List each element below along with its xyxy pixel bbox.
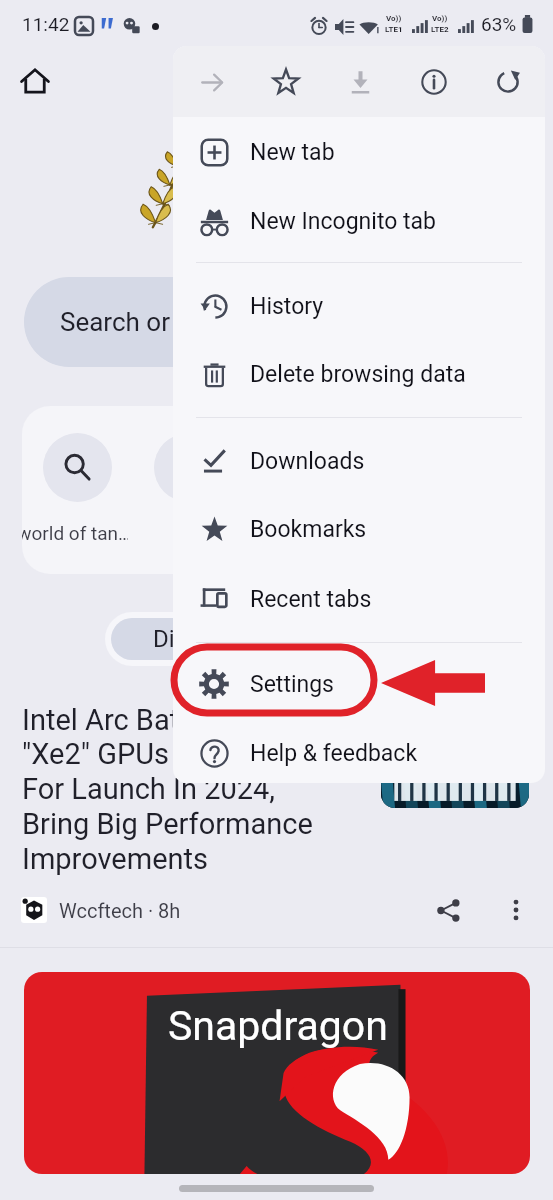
staticText: Discover (153, 625, 246, 653)
button[interactable]: Search or type URL (24, 277, 454, 367)
staticText: Downloads (250, 448, 365, 475)
button[interactable]: Help & feedback (173, 730, 545, 776)
staticText: Snapdragon (168, 1002, 388, 1050)
staticText: New tab (250, 139, 335, 166)
staticText: 1 (168, 522, 208, 544)
button[interactable]: world of tan… (22, 433, 133, 553)
staticText: Settings (250, 671, 334, 698)
button[interactable]: History (173, 283, 545, 329)
staticText: Delete browsing data (250, 361, 466, 388)
staticText: 63% (481, 13, 517, 35)
staticText: Recent tabs (250, 586, 372, 613)
button[interactable]: Discover (111, 618, 287, 660)
staticText: Search or type URL (60, 307, 279, 337)
staticText: Bookmarks (250, 516, 367, 543)
button[interactable]: New tab (173, 129, 545, 175)
button[interactable]: Settings (173, 661, 545, 707)
staticText: Wccftech · 8h (59, 899, 181, 922)
button[interactable]: Home (12, 58, 57, 103)
button[interactable]: Bookmarks (173, 506, 545, 552)
staticText: Help & feedback (250, 740, 418, 767)
button[interactable]: Delete browsing data (173, 351, 545, 397)
button[interactable]: Reload (479, 53, 537, 111)
button[interactable]: Forward (183, 53, 241, 111)
button[interactable]: New Incognito tab (173, 198, 545, 244)
button[interactable]: Recent tabs (173, 576, 545, 622)
staticText: Intel Arc Battlemage "Xe2" GPUs Expected… (22, 703, 402, 877)
staticText: Vo)) (432, 14, 448, 23)
button[interactable]: Downloads (173, 438, 545, 484)
staticText: New Incognito tab (250, 208, 436, 235)
button[interactable]: Download (331, 53, 389, 111)
staticText: Vo)) (386, 14, 402, 23)
button[interactable]: More options (495, 889, 537, 931)
button[interactable]: Bookmark (257, 53, 315, 111)
button[interactable]: Snapdragon (24, 972, 530, 1174)
button[interactable]: Share (427, 889, 469, 931)
staticText: LTE2 (431, 25, 449, 34)
staticText: world of tan… (22, 522, 128, 544)
staticText: LTE1 (385, 25, 403, 34)
button[interactable]: 1 (133, 433, 244, 553)
staticText: History (250, 293, 324, 320)
button[interactable]: Page info (405, 53, 463, 111)
staticText: 11:42 (22, 13, 70, 35)
